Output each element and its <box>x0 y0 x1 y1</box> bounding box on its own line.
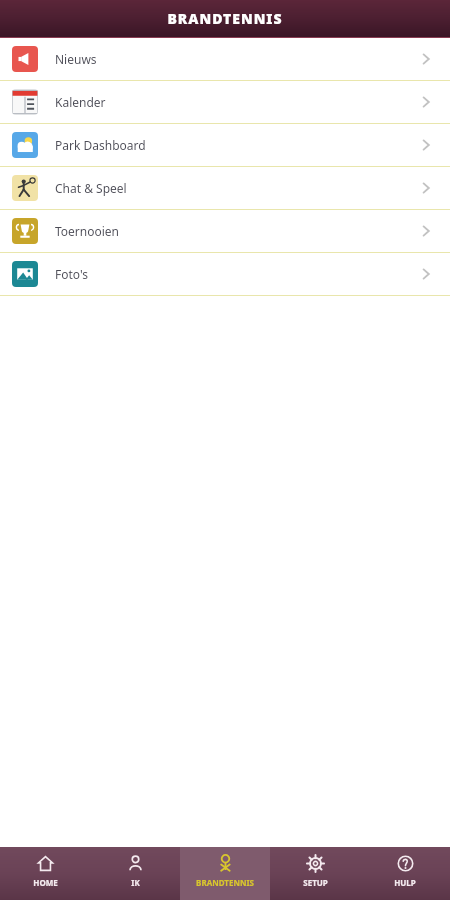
staticText: BRANDTENNIS <box>196 877 254 888</box>
staticText: HOME <box>33 877 58 888</box>
button[interactable]: Kalender <box>0 81 450 124</box>
button[interactable]: Home <box>0 847 90 900</box>
button[interactable]: Brandtennis <box>180 847 270 900</box>
staticText: Nieuws <box>55 51 97 67</box>
staticText: Kalender <box>55 94 106 110</box>
button[interactable]: Park Dashboard <box>0 124 450 167</box>
button[interactable]: Ik <box>90 847 180 900</box>
staticText: Toernooien <box>55 223 120 239</box>
staticText: BRANDTENNIS <box>167 9 283 28</box>
button[interactable]: Toernooien <box>0 210 450 253</box>
staticText: IK <box>131 877 140 888</box>
staticText: Park Dashboard <box>55 137 146 153</box>
button[interactable]: Hulp <box>360 847 450 900</box>
button[interactable]: Chat & Speel <box>0 167 450 210</box>
staticText: Chat & Speel <box>55 180 127 196</box>
button[interactable]: Nieuws <box>0 38 450 81</box>
button[interactable]: Foto's <box>0 253 450 296</box>
staticText: SETUP <box>303 877 328 888</box>
staticText: HULP <box>394 877 416 888</box>
staticText: Foto's <box>55 266 89 282</box>
button[interactable]: Setup <box>270 847 360 900</box>
